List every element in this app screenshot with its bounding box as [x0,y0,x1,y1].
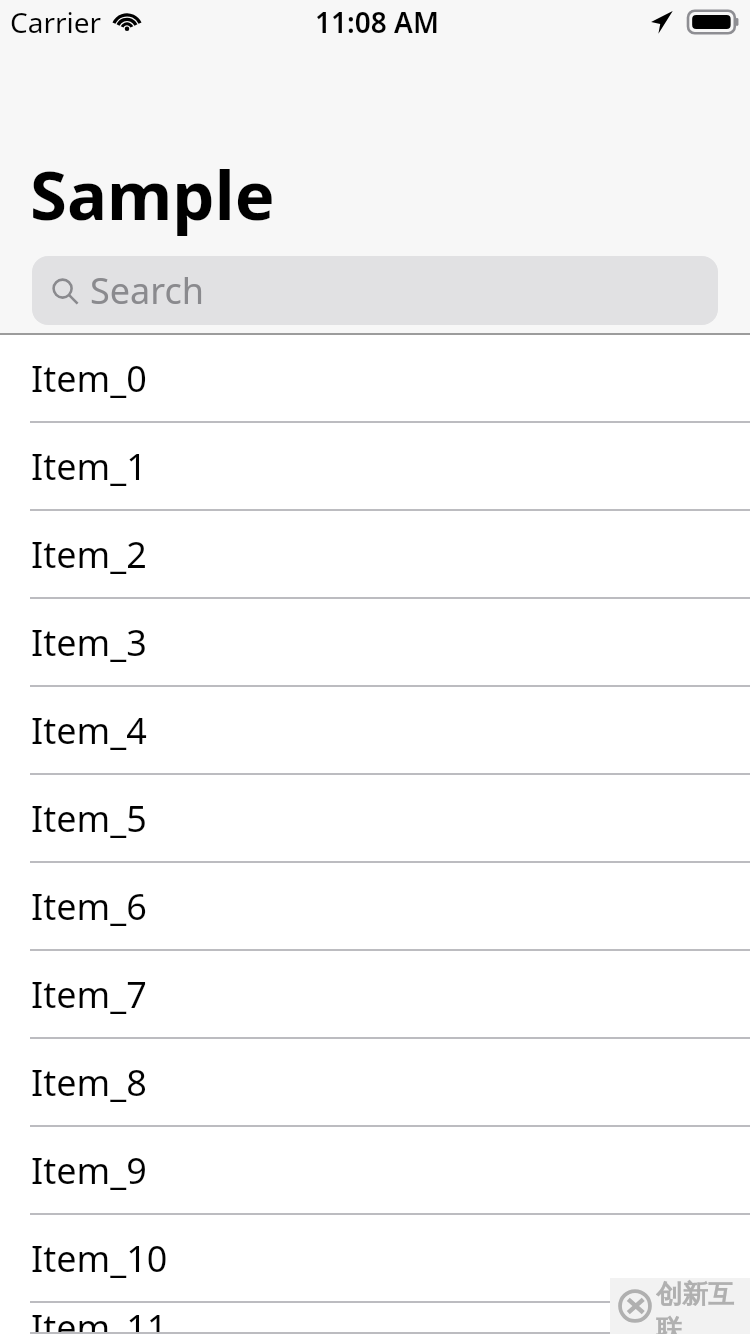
staticText: Sample [30,148,275,239]
button[interactable]: Item_9 [0,1127,750,1215]
button[interactable]: Item_5 [0,775,750,863]
staticText: Item_11 [31,1303,168,1332]
staticText: 创新互联 [656,1278,750,1334]
button[interactable]: Item_8 [0,1039,750,1127]
button[interactable]: Item_7 [0,951,750,1039]
button[interactable]: Item_4 [0,687,750,775]
button[interactable]: Item_6 [0,863,750,951]
button[interactable]: Item_10 [0,1215,750,1303]
staticText: Item_6 [31,882,147,931]
staticText: Search [90,266,204,315]
staticText: Item_3 [31,618,147,667]
button[interactable]: Item_3 [0,599,750,687]
staticText: Item_1 [31,442,147,491]
staticText: Carrier [10,3,102,41]
staticText: Item_4 [31,706,147,755]
button[interactable]: Search [32,256,718,325]
button[interactable]: Item_0 [0,335,750,423]
staticText: Item_8 [31,1058,147,1107]
staticText: Item_5 [31,794,147,843]
staticText: Item_2 [31,530,147,579]
staticText: Item_7 [31,970,147,1019]
button[interactable]: Item_11 [0,1303,750,1334]
button[interactable]: Item_1 [0,423,750,511]
staticText: Item_9 [31,1146,147,1195]
staticText: Item_10 [31,1234,168,1283]
button[interactable]: Item_2 [0,511,750,599]
staticText: 11:08 AM [315,3,439,41]
staticText: Item_0 [31,354,147,403]
